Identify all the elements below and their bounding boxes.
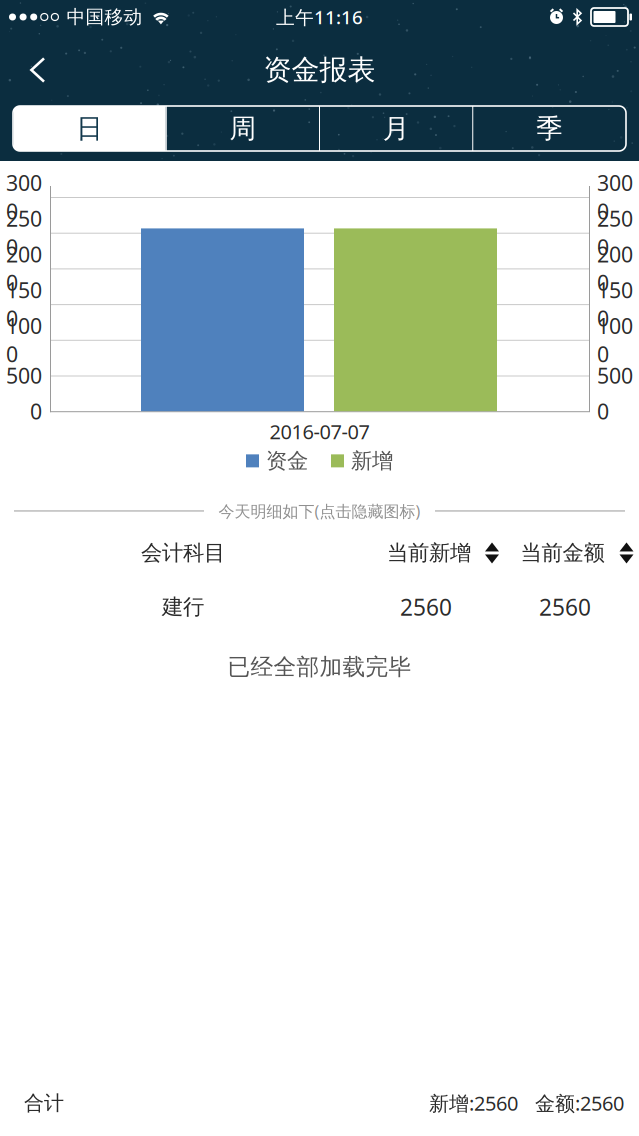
staticText: 0: [30, 397, 42, 425]
staticText: 2000: [597, 240, 633, 297]
staticText: 新增: [351, 448, 393, 474]
staticText: 新增:2560: [429, 1090, 518, 1116]
staticText: 1000: [597, 311, 633, 368]
button[interactable]: Back: [0, 45, 67, 95]
button[interactable]: 日: [13, 106, 166, 151]
staticText: 2560: [400, 592, 452, 622]
button[interactable]: 月: [320, 106, 472, 151]
staticText: 上午11:16: [276, 5, 363, 29]
staticText: 2000: [6, 240, 42, 297]
staticText: 金额:2560: [535, 1090, 624, 1116]
staticText: 合计: [24, 1091, 64, 1115]
staticText: 季: [536, 112, 563, 145]
staticText: 500: [597, 361, 633, 390]
button[interactable]: 当前金额: [516, 538, 638, 568]
staticText: 周: [229, 112, 256, 145]
staticText: 中国移动: [66, 5, 142, 28]
staticText: 资金: [266, 448, 308, 474]
button[interactable]: 周: [167, 106, 319, 151]
staticText: 2500: [597, 204, 633, 261]
staticText: 资金报表: [263, 53, 375, 87]
staticText: 2560: [539, 592, 591, 622]
staticText: 会计科目: [141, 540, 225, 566]
staticText: 月: [383, 112, 410, 145]
button[interactable]: 季: [473, 106, 625, 151]
staticText: 3000: [597, 169, 633, 225]
button[interactable]: 今天明细如下(点击隐藏图标): [14, 502, 625, 520]
staticText: 1500: [597, 276, 633, 332]
staticText: 1500: [6, 276, 42, 332]
staticText: 当前金额: [520, 540, 604, 566]
staticText: 3000: [6, 169, 42, 225]
staticText: 今天明细如下(点击隐藏图标): [218, 500, 420, 521]
staticText: 建行: [162, 594, 204, 620]
staticText: 0: [597, 397, 609, 425]
staticText: 500: [6, 361, 42, 390]
button[interactable]: 建行: [0, 594, 639, 620]
staticText: 2016-07-07: [269, 418, 369, 445]
button[interactable]: 当前新增: [382, 538, 504, 568]
staticText: 1000: [6, 311, 42, 368]
staticText: 当前新增: [387, 540, 471, 566]
staticText: 日: [76, 112, 103, 145]
staticText: 2500: [6, 204, 42, 261]
staticText: 已经全部加载完毕: [227, 653, 411, 681]
